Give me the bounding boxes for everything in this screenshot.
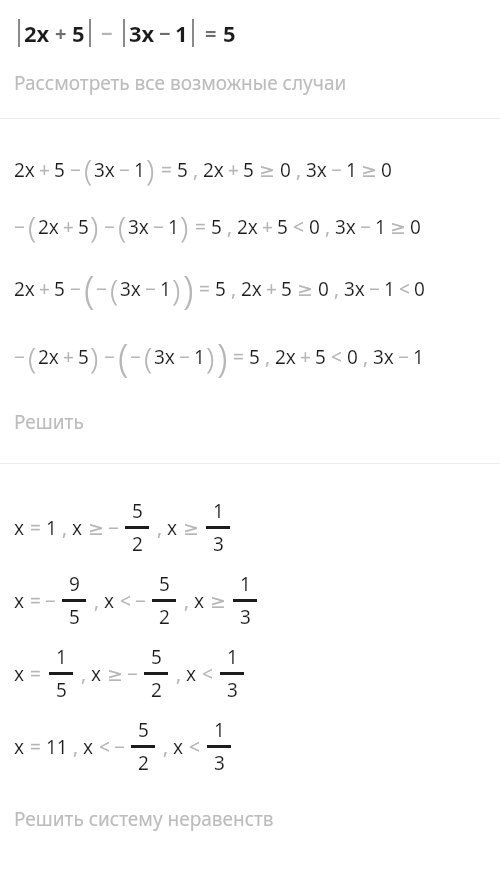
- staticText: ,: [329, 276, 344, 302]
- staticText: <: [331, 344, 342, 370]
- staticText: ≥: [88, 517, 104, 539]
- staticText: ,: [179, 588, 194, 614]
- staticText: 2x: [14, 157, 35, 183]
- staticText: (: [110, 269, 119, 310]
- staticText: ,: [76, 661, 91, 687]
- staticText: ): [180, 206, 189, 247]
- staticText: 5: [69, 604, 80, 630]
- staticText: <: [189, 734, 200, 760]
- staticText: +: [63, 344, 74, 370]
- staticText: (: [118, 331, 129, 383]
- staticText: 5: [54, 157, 65, 183]
- staticText: 5: [54, 276, 65, 302]
- staticText: −: [114, 734, 125, 760]
- staticText: ,: [188, 157, 203, 183]
- staticText: ,: [226, 276, 241, 302]
- staticText: 3: [214, 750, 225, 776]
- staticText: 3: [227, 677, 238, 703]
- staticText: 1: [375, 214, 386, 240]
- staticText: 3x: [373, 344, 394, 370]
- staticText: 1: [413, 344, 424, 370]
- staticText: −: [70, 276, 81, 302]
- staticText: (: [28, 206, 37, 247]
- staticText: x: [14, 661, 25, 687]
- staticText: +: [55, 20, 67, 47]
- staticText: 2x: [203, 157, 224, 183]
- staticText: −: [398, 344, 409, 370]
- staticText: 0: [410, 214, 421, 240]
- staticText: 2x: [275, 344, 296, 370]
- staticText: 2x: [14, 276, 35, 302]
- staticText: ,: [291, 157, 306, 183]
- staticText: Решить: [14, 409, 84, 435]
- staticText: x: [186, 661, 197, 687]
- staticText: ≥: [107, 663, 123, 685]
- staticText: 1: [46, 515, 57, 541]
- staticText: 3x: [344, 276, 365, 302]
- staticText: −: [14, 344, 25, 370]
- staticText: ,: [68, 734, 83, 760]
- button[interactable]: Решить: [0, 409, 500, 435]
- staticText: x: [14, 734, 25, 760]
- staticText: 5: [211, 214, 222, 240]
- staticText: 1: [346, 157, 357, 183]
- staticText: −: [145, 276, 156, 302]
- staticText: ): [172, 269, 181, 310]
- staticText: (: [118, 206, 127, 247]
- staticText: 1: [56, 644, 67, 670]
- staticText: =: [195, 214, 206, 240]
- staticText: <: [99, 734, 110, 760]
- staticText: −: [135, 588, 146, 614]
- staticText: Рассмотреть все возможные случаи: [14, 70, 347, 96]
- staticText: −: [101, 20, 113, 47]
- button[interactable]: Решить систему неравенств: [0, 806, 500, 832]
- staticText: −: [45, 588, 56, 614]
- staticText: x: [167, 515, 178, 541]
- staticText: =: [30, 515, 41, 541]
- staticText: ): [146, 149, 155, 190]
- staticText: −: [119, 157, 130, 183]
- staticText: ,: [260, 344, 275, 370]
- staticText: 2x: [38, 214, 59, 240]
- staticText: 11: [46, 734, 68, 760]
- staticText: ≥: [297, 278, 313, 300]
- button[interactable]: 2x: [0, 18, 500, 48]
- staticText: ): [183, 263, 194, 315]
- staticText: 1: [240, 571, 251, 597]
- staticText: ≥: [210, 590, 226, 612]
- staticText: 5: [281, 276, 292, 302]
- staticText: −: [153, 214, 164, 240]
- staticText: x: [91, 661, 102, 687]
- staticText: 3: [240, 604, 251, 630]
- staticText: x: [104, 588, 115, 614]
- staticText: =: [233, 344, 244, 370]
- staticText: −: [127, 661, 138, 687]
- staticText: x: [14, 588, 25, 614]
- staticText: −: [331, 157, 342, 183]
- staticText: 0: [381, 157, 392, 183]
- staticText: ,: [358, 344, 373, 370]
- staticText: ,: [57, 515, 72, 541]
- staticText: 9: [69, 571, 80, 597]
- staticText: x: [72, 515, 83, 541]
- staticText: ≥: [390, 216, 406, 238]
- staticText: −: [96, 276, 107, 302]
- staticText: 1: [160, 276, 171, 302]
- staticText: 3x: [120, 276, 141, 302]
- staticText: 0: [347, 344, 358, 370]
- staticText: 5: [78, 214, 89, 240]
- staticText: 5: [56, 677, 67, 703]
- staticText: <: [202, 661, 213, 687]
- staticText: 1: [214, 717, 225, 743]
- staticText: 3x: [128, 214, 149, 240]
- staticText: −: [14, 214, 25, 240]
- staticText: −: [104, 214, 115, 240]
- staticText: 0: [280, 157, 291, 183]
- button[interactable]: Рассмотреть все возможные случаи: [0, 70, 500, 96]
- staticText: =: [30, 588, 41, 614]
- staticText: +: [63, 214, 74, 240]
- staticText: 5: [132, 498, 143, 524]
- staticText: 2x: [237, 214, 258, 240]
- staticText: ≥: [183, 517, 199, 539]
- staticText: ,: [89, 588, 104, 614]
